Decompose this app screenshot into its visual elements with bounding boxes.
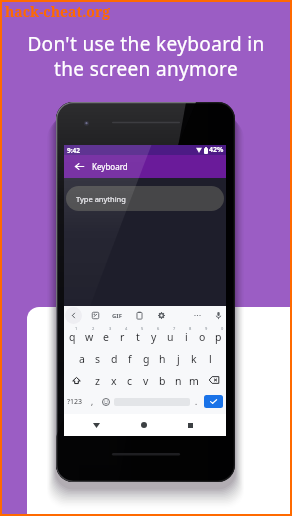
staticText: 3 <box>109 326 112 331</box>
staticText: p <box>215 330 222 344</box>
staticText: 1 <box>75 326 78 331</box>
staticText: n <box>175 374 182 388</box>
staticText: o <box>199 330 206 344</box>
staticText: 2 <box>92 326 95 331</box>
staticText: u <box>167 330 174 344</box>
button[interactable] <box>98 325 114 347</box>
staticText: v <box>143 374 149 388</box>
staticText: . <box>195 396 198 407</box>
button[interactable] <box>122 347 138 369</box>
staticText: 42% <box>209 145 224 155</box>
button[interactable] <box>178 325 194 347</box>
button[interactable] <box>210 325 226 347</box>
staticText: Don't use the keyboard in the screen any… <box>0 31 292 82</box>
button[interactable] <box>81 325 98 347</box>
staticText: 4 <box>125 326 128 331</box>
staticText: hack-cheat.org <box>5 2 111 21</box>
button[interactable] <box>154 347 170 369</box>
staticText: 9:42 <box>67 146 80 155</box>
button[interactable] <box>170 369 186 391</box>
button[interactable] <box>146 325 162 347</box>
button[interactable]: Shift <box>64 369 89 391</box>
staticText: d <box>111 352 118 366</box>
staticText: Type anything <box>76 194 126 204</box>
button[interactable]: Clipboard <box>130 306 148 325</box>
staticText: ?123 <box>67 397 83 407</box>
staticText: GIF <box>112 312 122 320</box>
staticText: 6 <box>157 326 160 331</box>
button[interactable]: Emoji <box>98 391 114 413</box>
button[interactable] <box>73 347 90 369</box>
staticText: 5 <box>141 326 144 331</box>
button[interactable]: Backspace <box>202 369 226 391</box>
button[interactable] <box>186 347 202 369</box>
staticText: l <box>209 352 212 366</box>
button[interactable]: GIF <box>107 306 127 325</box>
button[interactable] <box>194 325 210 347</box>
button[interactable] <box>202 347 218 369</box>
button[interactable]: Recents <box>182 414 198 436</box>
staticText: m <box>189 374 199 388</box>
staticText: t <box>136 330 140 344</box>
staticText: y <box>151 330 157 344</box>
button[interactable]: Voice input <box>209 306 227 325</box>
button[interactable]: Enter <box>204 395 223 408</box>
button[interactable] <box>138 347 154 369</box>
button[interactable] <box>162 325 178 347</box>
button[interactable] <box>122 369 138 391</box>
button[interactable]: Hide keyboard <box>88 414 104 436</box>
staticText: x <box>111 374 117 388</box>
button[interactable]: Back <box>64 155 226 178</box>
button[interactable]: Settings <box>152 306 170 325</box>
staticText: a <box>79 352 85 366</box>
staticText: 9 <box>205 326 208 331</box>
staticText: b <box>159 374 166 388</box>
staticText: h <box>159 352 166 366</box>
button[interactable]: Type anything <box>66 186 224 211</box>
staticText: 7 <box>173 326 176 331</box>
button[interactable]: Previous <box>64 306 82 325</box>
staticText: r <box>120 330 125 344</box>
button[interactable]: Home <box>136 414 152 436</box>
button[interactable]: . <box>190 391 202 413</box>
staticText: 8 <box>189 326 192 331</box>
staticText: c <box>127 374 133 388</box>
staticText: g <box>143 352 150 366</box>
staticText: i <box>185 330 188 344</box>
button[interactable] <box>106 369 122 391</box>
staticText: k <box>191 352 197 366</box>
staticText: q <box>69 330 76 344</box>
button[interactable] <box>138 369 154 391</box>
staticText: w <box>85 330 94 344</box>
button[interactable] <box>186 369 202 391</box>
button[interactable]: Back <box>69 155 89 178</box>
staticText: e <box>103 330 109 344</box>
staticText: z <box>95 374 100 388</box>
button[interactable] <box>64 325 81 347</box>
button[interactable] <box>106 347 122 369</box>
button[interactable]: ?123 <box>64 391 86 413</box>
button[interactable] <box>89 369 106 391</box>
button[interactable]: , <box>86 391 98 413</box>
button[interactable] <box>154 369 170 391</box>
staticText: j <box>177 352 180 366</box>
button[interactable] <box>114 325 130 347</box>
button[interactable]: More options <box>188 306 206 325</box>
button[interactable] <box>170 347 186 369</box>
staticText: , <box>91 396 94 407</box>
button[interactable] <box>90 347 106 369</box>
staticText: 0 <box>221 326 224 331</box>
button[interactable] <box>130 325 146 347</box>
staticText: f <box>128 352 132 366</box>
button[interactable]: Stickers <box>86 306 104 325</box>
staticText: s <box>95 352 101 366</box>
staticText: Keyboard <box>92 161 128 172</box>
